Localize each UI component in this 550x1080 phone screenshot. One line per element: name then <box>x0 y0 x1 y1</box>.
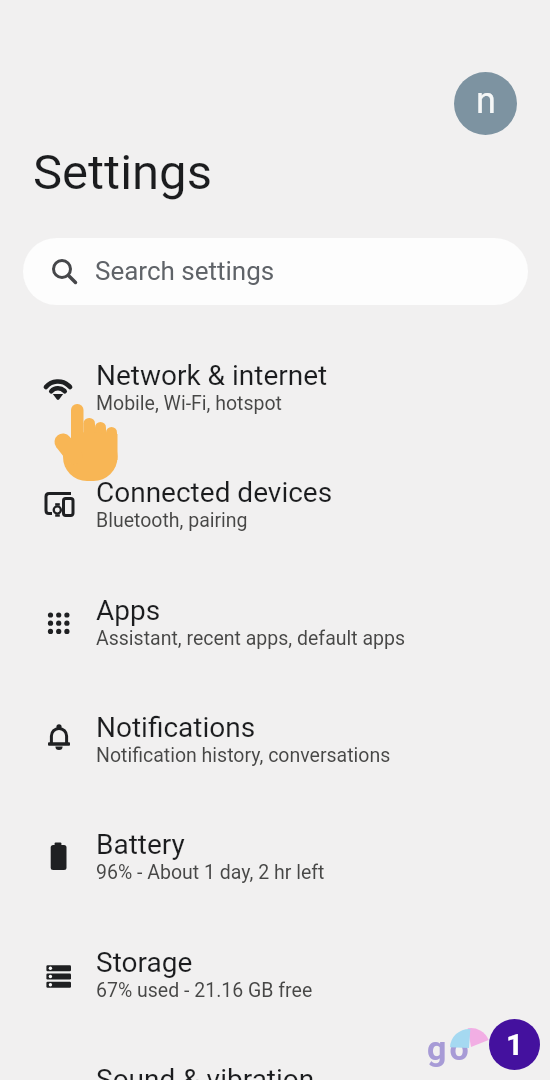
staticText: Bluetooth, pairing <box>96 509 248 532</box>
button[interactable]: Apps <box>0 576 550 693</box>
staticText: Assistant, recent apps, default apps <box>96 627 406 650</box>
button[interactable]: Battery <box>0 810 550 927</box>
button[interactable]: Notifications <box>0 693 550 810</box>
staticText: Sound & vibration <box>96 1063 315 1080</box>
staticText: Network & internet <box>96 359 328 392</box>
staticText: n <box>476 80 496 122</box>
staticText: Battery <box>96 828 185 861</box>
staticText: go <box>427 1028 472 1068</box>
button[interactable]: Network & internet <box>0 341 550 458</box>
staticText: Mobile, Wi-Fi, hotspot <box>96 392 282 415</box>
staticText: Notifications <box>96 711 256 744</box>
staticText: Apps <box>96 594 161 627</box>
staticText: Search settings <box>95 256 275 286</box>
staticText: 1 <box>506 1027 524 1062</box>
button[interactable]: 1 <box>489 1019 540 1070</box>
button[interactable]: Sound & vibration <box>0 1045 550 1080</box>
staticText: Settings <box>33 144 212 201</box>
staticText: Storage <box>96 946 193 979</box>
staticText: 96% - About 1 day, 2 hr left <box>96 861 325 884</box>
button[interactable]: Search settings <box>23 238 528 305</box>
button[interactable]: Connected devices <box>0 458 550 575</box>
staticText: 67% used - 21.16 GB free <box>96 979 313 1002</box>
staticText: Notification history, conversations <box>96 744 391 767</box>
staticText: Connected devices <box>96 476 333 509</box>
button[interactable]: n <box>454 72 517 135</box>
button[interactable]: Storage <box>0 928 550 1045</box>
